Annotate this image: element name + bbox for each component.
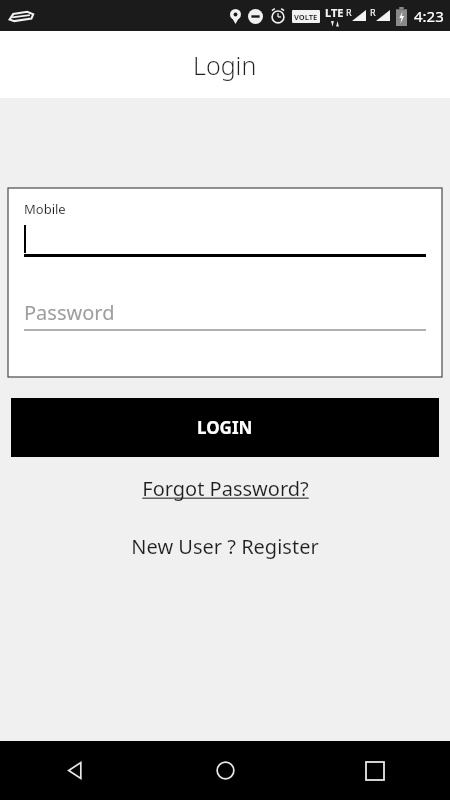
- staticText: New User ? Register: [131, 533, 319, 560]
- staticText: Forgot Password?: [142, 475, 309, 502]
- staticText: LOGIN: [197, 416, 253, 439]
- button[interactable]: Mobile: [24, 200, 426, 257]
- staticText: LTE: [325, 5, 344, 20]
- staticText: R: [346, 6, 352, 18]
- staticText: Login: [193, 48, 257, 82]
- button[interactable]: Recent apps: [300, 741, 450, 800]
- button[interactable]: LOGIN: [11, 398, 439, 457]
- button[interactable]: New User ? Register: [125, 531, 325, 562]
- button[interactable]: Home: [150, 741, 300, 800]
- staticText: VOLTE: [294, 12, 318, 22]
- staticText: Mobile: [24, 200, 66, 218]
- button[interactable]: Back: [0, 741, 150, 800]
- staticText: 4:23: [414, 6, 444, 26]
- button[interactable]: Forgot Password?: [136, 473, 315, 504]
- staticText: R: [370, 6, 376, 18]
- button[interactable]: Password: [24, 299, 426, 331]
- staticText: Password: [24, 299, 115, 326]
